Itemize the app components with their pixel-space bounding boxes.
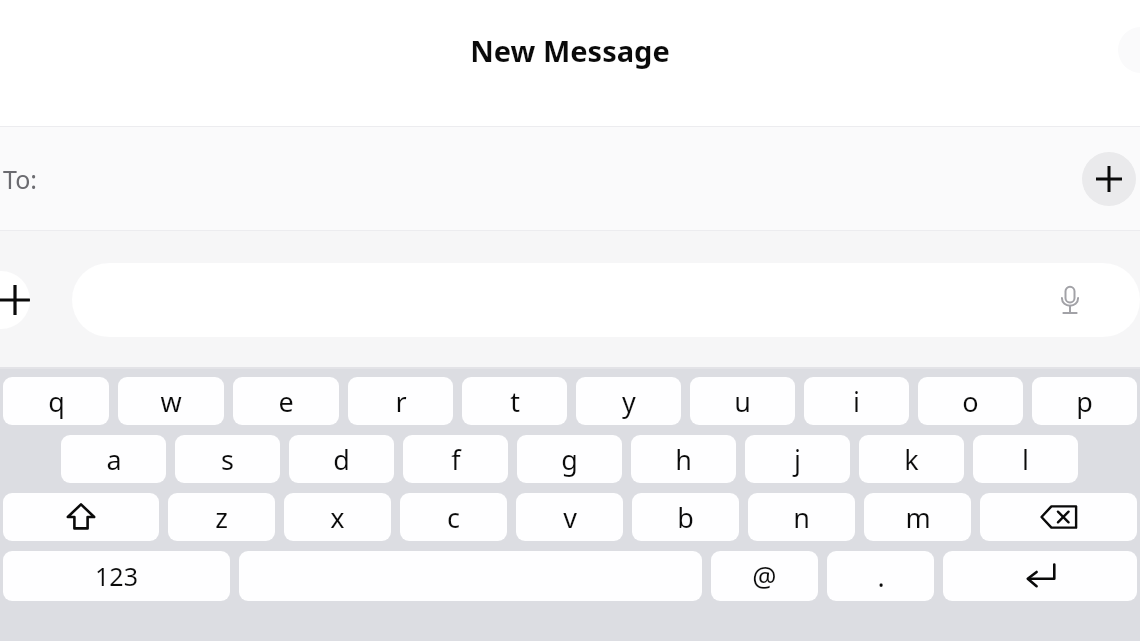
staticText: j (794, 441, 801, 478)
button[interactable]: e (233, 377, 339, 425)
staticText: a (106, 441, 122, 478)
button[interactable]: n (748, 493, 855, 541)
button[interactable]: At sign (711, 551, 818, 601)
staticText: x (330, 499, 345, 536)
staticText: q (48, 383, 65, 420)
button[interactable]: Backspace (980, 493, 1137, 541)
staticText: f (451, 441, 461, 478)
staticText: y (622, 383, 636, 420)
staticText: s (221, 441, 234, 478)
button[interactable]: o (918, 377, 1023, 425)
staticText: To: (3, 162, 37, 196)
button[interactable]: g (517, 435, 622, 483)
staticText: r (395, 383, 407, 420)
button[interactable]: Return (943, 551, 1137, 601)
button[interactable]: Add attachment (0, 271, 30, 329)
staticText: o (962, 383, 979, 420)
button[interactable]: u (690, 377, 795, 425)
staticText: @ (752, 558, 777, 595)
staticText: u (734, 383, 751, 420)
button[interactable]: h (631, 435, 736, 483)
staticText: z (215, 499, 228, 536)
button[interactable]: d (289, 435, 394, 483)
staticText: i (853, 383, 860, 420)
button[interactable]: i (804, 377, 909, 425)
staticText: k (904, 441, 919, 478)
button[interactable]: k (859, 435, 964, 483)
staticText: 123 (95, 559, 138, 593)
staticText: l (1022, 441, 1029, 478)
button[interactable]: x (284, 493, 391, 541)
button[interactable]: t (462, 377, 567, 425)
button[interactable]: j (745, 435, 850, 483)
button[interactable]: m (864, 493, 971, 541)
button[interactable]: Period (827, 551, 934, 601)
button[interactable]: w (118, 377, 224, 425)
staticText: New Message (470, 31, 670, 70)
staticText: g (561, 441, 578, 478)
staticText: h (675, 441, 692, 478)
button[interactable]: a (61, 435, 166, 483)
button[interactable]: To: (0, 127, 1140, 231)
button[interactable]: z (168, 493, 275, 541)
button[interactable]: v (516, 493, 623, 541)
button[interactable]: q (3, 377, 109, 425)
button[interactable]: y (576, 377, 681, 425)
button[interactable]: Numbers (3, 551, 230, 601)
staticText: d (333, 441, 350, 478)
staticText: n (793, 499, 810, 536)
staticText: m (905, 499, 931, 536)
button[interactable]: f (403, 435, 508, 483)
button[interactable]: l (973, 435, 1078, 483)
button[interactable]: c (400, 493, 507, 541)
button[interactable]: Add recipient (1082, 152, 1136, 206)
staticText: e (278, 383, 294, 420)
button[interactable]: Shift (3, 493, 159, 541)
staticText: t (510, 383, 520, 420)
staticText: v (563, 499, 577, 536)
staticText: b (677, 499, 694, 536)
staticText: p (1076, 383, 1093, 420)
staticText: c (447, 499, 460, 536)
button[interactable]: s (175, 435, 280, 483)
button[interactable]: p (1032, 377, 1137, 425)
staticText: . (877, 558, 885, 595)
button[interactable]: Dictation (1052, 282, 1088, 318)
staticText: w (160, 383, 182, 420)
button[interactable]: Dictation (72, 263, 1140, 337)
button[interactable]: r (348, 377, 453, 425)
button[interactable]: b (632, 493, 739, 541)
